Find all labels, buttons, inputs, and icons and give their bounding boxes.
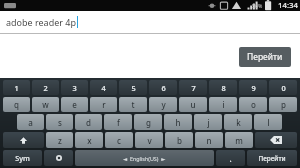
staticText: e [72,99,77,110]
button[interactable]: a [17,114,44,130]
staticText: t [131,99,135,110]
button[interactable]: t [119,97,147,112]
staticText: d [86,117,91,128]
button[interactable]: l [254,114,282,130]
staticText: p [281,99,286,110]
staticText: . [229,153,232,164]
button[interactable]: g [134,114,162,130]
button[interactable]: 5 [119,80,147,95]
staticText: j [207,117,210,128]
staticText: 8 [221,83,226,93]
button[interactable]: 3 [61,80,88,95]
button[interactable]: s [46,114,73,130]
button[interactable]: 6 [149,80,177,95]
button[interactable]: z [46,132,73,148]
staticText: adobe reader 4p [6,16,76,28]
button[interactable]: 7 [179,80,207,95]
staticText: 0 [281,83,286,93]
staticText: 3 [72,83,77,93]
button[interactable]: Backspace [255,132,297,148]
button[interactable]: . [216,150,245,166]
button[interactable]: e [61,97,88,112]
staticText: h [175,117,181,128]
staticText: 56% [252,2,263,9]
button[interactable]: Shift [3,132,44,148]
button[interactable]: i [209,97,237,112]
button[interactable]: d [75,114,102,130]
staticText: b [177,135,182,146]
staticText: x [87,135,92,146]
button[interactable]: h [164,114,192,130]
button[interactable]: o [239,97,267,112]
button[interactable]: Перейти [247,150,297,166]
staticText: Sym [15,153,30,163]
staticText: 1 [14,83,19,93]
staticText: r [102,99,106,110]
button[interactable]: Space [75,150,214,166]
staticText: n [206,135,212,146]
button[interactable]: v [135,132,163,148]
button[interactable]: p [269,97,297,112]
staticText: 7 [191,83,196,93]
staticText: g [146,117,151,128]
staticText: 2 [43,83,48,93]
staticText: q [14,99,19,110]
staticText: 14:34 [278,0,298,11]
button[interactable]: 2 [32,80,59,95]
button[interactable]: y [149,97,177,112]
staticText: Перейти [247,51,283,63]
staticText: Перейти [258,154,286,163]
button[interactable]: 9 [239,80,267,95]
staticText: 6 [161,83,166,93]
staticText: ◄ English(US) ► [123,155,166,162]
staticText: f [117,117,120,128]
button[interactable]: 0 [269,80,297,95]
button[interactable]: adobe reader 4p [6,11,300,33]
button[interactable]: x [75,132,103,148]
button[interactable]: q [3,97,30,112]
button[interactable]: 1 [3,80,30,95]
button[interactable]: c [105,132,133,148]
staticText: v [147,135,152,146]
staticText: w [42,99,49,110]
staticText: s [58,117,62,128]
staticText: z [58,135,62,146]
staticText: y [161,99,166,110]
staticText: l [267,117,270,128]
staticText: u [190,99,196,110]
staticText: 9 [251,83,256,93]
button[interactable]: n [195,132,223,148]
button[interactable]: Input settings [44,150,73,166]
staticText: m [235,135,243,146]
staticText: c [117,135,121,146]
staticText: a [28,117,33,128]
button[interactable]: m [225,132,253,148]
button[interactable]: f [104,114,132,130]
button[interactable]: j [194,114,222,130]
button[interactable]: Sym [3,150,42,166]
button[interactable]: 8 [209,80,237,95]
staticText: 5 [131,83,136,93]
button[interactable]: b [165,132,193,148]
staticText: i [222,99,225,110]
button[interactable]: k [224,114,252,130]
staticText: o [251,99,256,110]
button[interactable]: w [32,97,59,112]
button[interactable]: u [179,97,207,112]
button[interactable]: 4 [90,80,117,95]
staticText: k [236,117,241,128]
button[interactable]: r [90,97,117,112]
staticText: 4 [101,83,106,93]
button[interactable]: Перейти [239,47,291,67]
